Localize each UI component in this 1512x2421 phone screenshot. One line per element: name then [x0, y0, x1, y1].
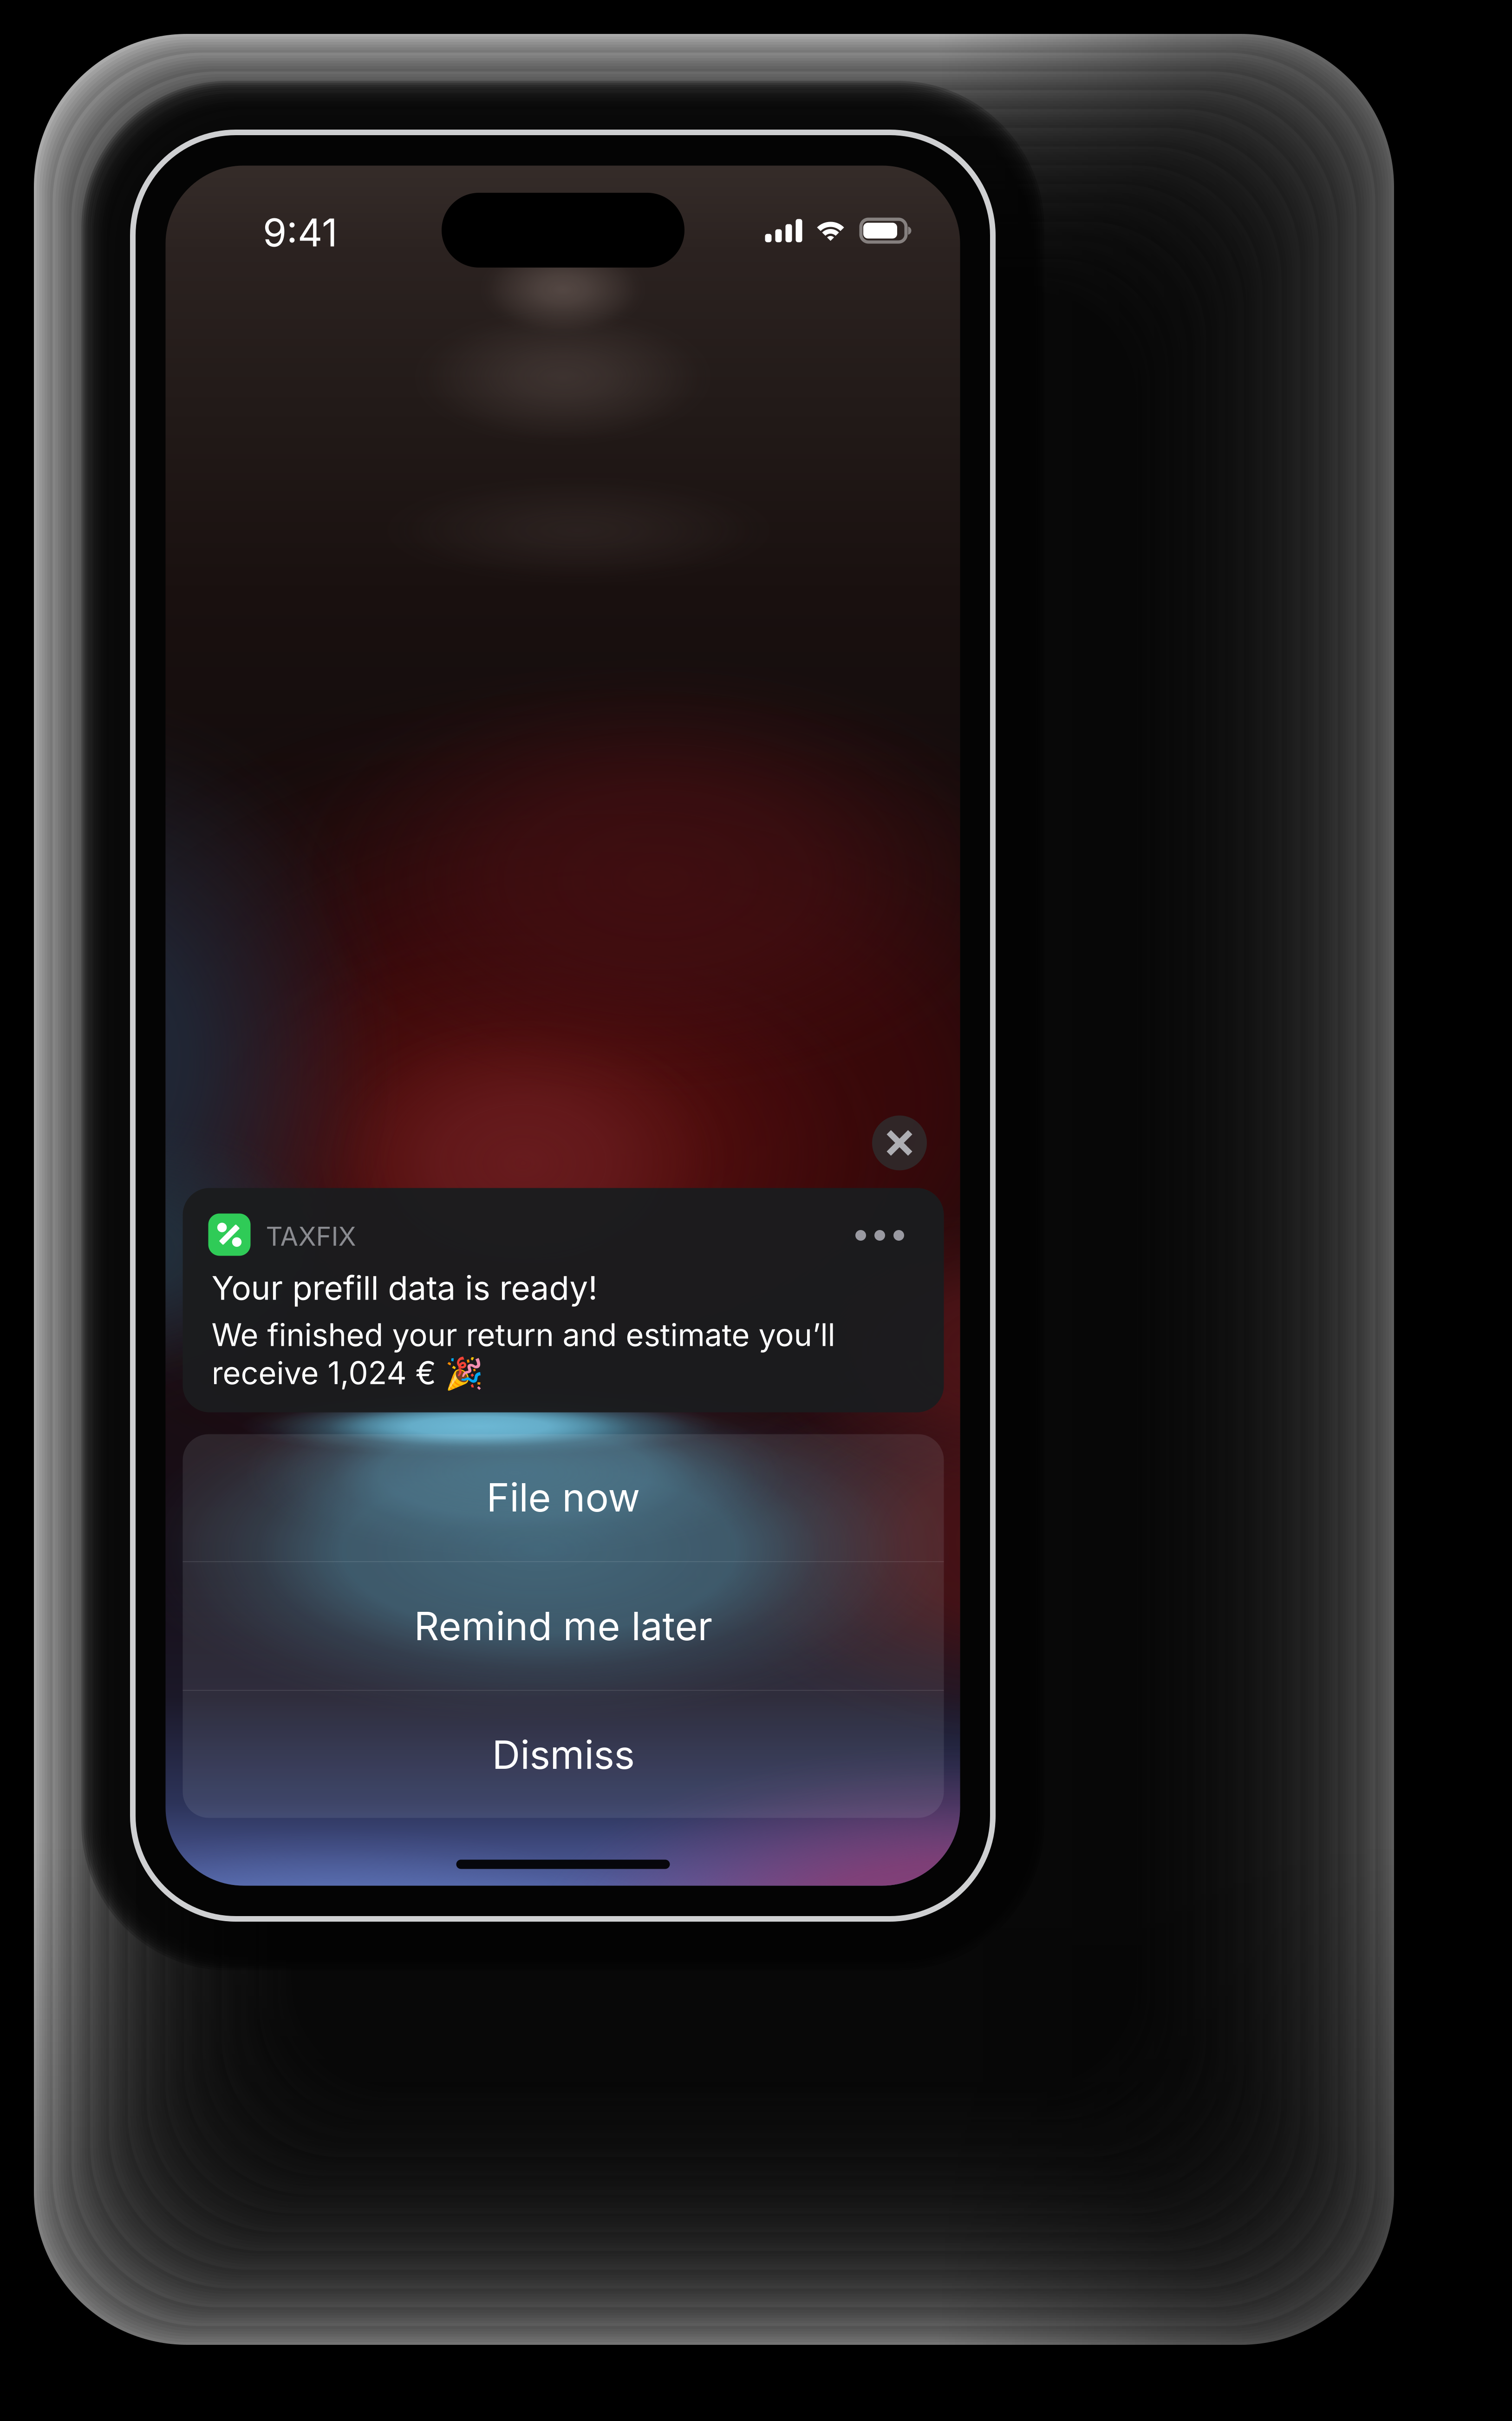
staticText: 9:41	[263, 209, 338, 256]
button[interactable]: Close notification	[872, 1116, 927, 1170]
staticText: receive 1,024 € 🎉	[212, 1354, 483, 1392]
staticText: File now	[486, 1474, 640, 1521]
button[interactable]: Dismiss	[183, 1691, 944, 1819]
staticText: Your prefill data is ready!	[212, 1268, 597, 1308]
staticText: TAXFIX	[266, 1221, 356, 1252]
button[interactable]: File now	[183, 1433, 944, 1561]
button[interactable]: TAXFIX	[183, 1188, 944, 1412]
button[interactable]: Remind me later	[183, 1562, 944, 1690]
staticText: Remind me later	[414, 1602, 713, 1650]
staticText: Dismiss	[492, 1731, 635, 1778]
staticText: We finished your return and estimate you…	[212, 1316, 835, 1354]
